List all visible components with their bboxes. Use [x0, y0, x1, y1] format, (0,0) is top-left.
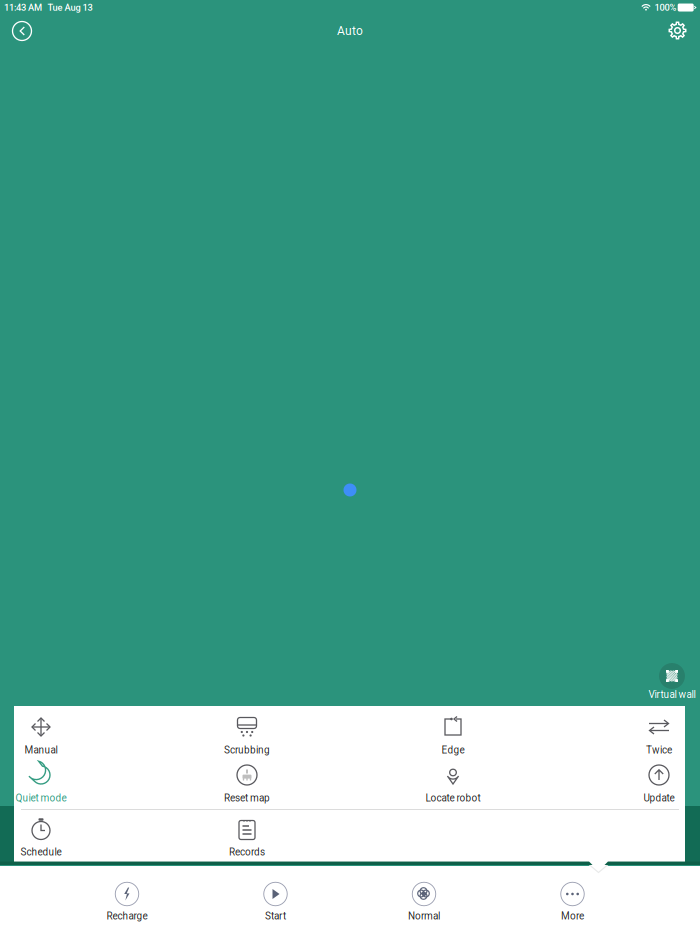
- button[interactable]: Records: [147, 807, 347, 873]
- button[interactable]: Edge: [353, 705, 553, 771]
- button[interactable]: Twice: [559, 705, 700, 771]
- staticText: Normal: [408, 910, 440, 922]
- button[interactable]: Recharge: [53, 876, 201, 934]
- button[interactable]: Settings: [657, 10, 697, 50]
- staticText: Locate robot: [425, 792, 480, 804]
- staticText: Edge: [441, 744, 464, 756]
- staticText: 11:43 AM: [4, 2, 42, 13]
- button[interactable]: Virtual wall: [612, 654, 700, 706]
- button[interactable]: Locate robot: [353, 753, 553, 819]
- staticText: Manual: [24, 744, 57, 756]
- staticText: Reset map: [224, 792, 270, 804]
- button[interactable]: Quiet mode: [0, 753, 141, 819]
- button[interactable]: Update: [559, 753, 700, 819]
- staticText: Auto: [337, 24, 363, 38]
- staticText: Records: [229, 846, 265, 858]
- button[interactable]: Schedule: [0, 807, 141, 873]
- staticText: Quiet mode: [15, 792, 66, 804]
- staticText: Tue Aug 13: [47, 2, 92, 13]
- staticText: Update: [643, 792, 674, 804]
- staticText: Schedule: [20, 846, 61, 858]
- button[interactable]: Scrubbing: [147, 705, 347, 771]
- button[interactable]: Back: [2, 11, 42, 51]
- staticText: Virtual wall: [648, 689, 695, 700]
- staticText: Twice: [646, 744, 672, 756]
- staticText: Recharge: [106, 910, 147, 922]
- button[interactable]: Start: [201, 876, 349, 934]
- staticText: Scrubbing: [224, 744, 270, 756]
- button[interactable]: Normal: [350, 876, 498, 934]
- button[interactable]: Reset map: [147, 753, 347, 819]
- button[interactable]: More: [498, 876, 646, 934]
- staticText: More: [561, 910, 584, 922]
- staticText: 100%: [654, 2, 676, 13]
- button[interactable]: Manual: [0, 705, 141, 771]
- staticText: Start: [265, 910, 286, 922]
